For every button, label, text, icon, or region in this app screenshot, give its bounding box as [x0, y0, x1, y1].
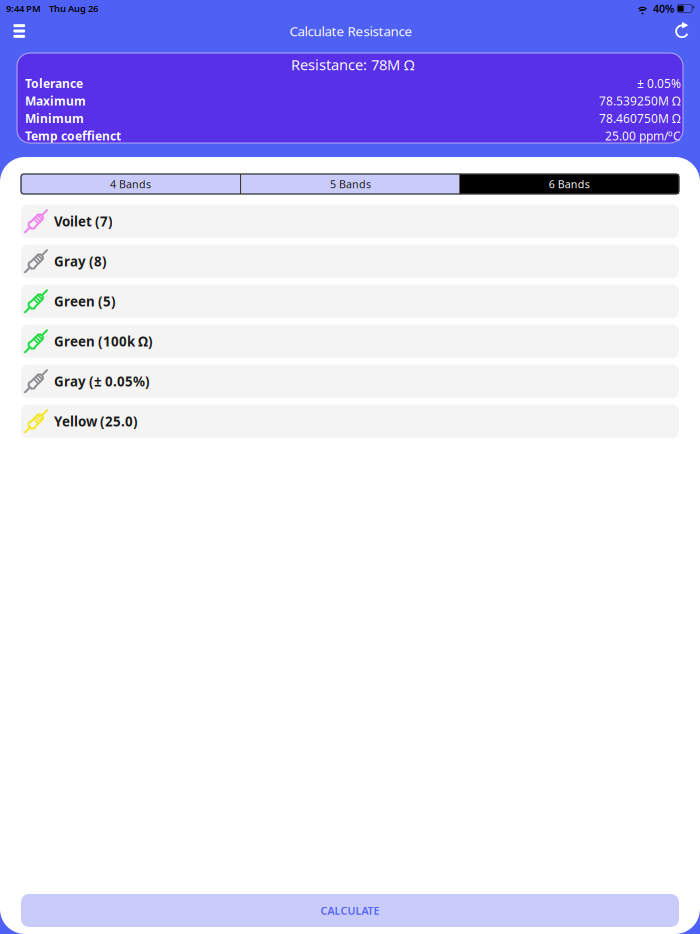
button[interactable]: Green (5): [21, 284, 679, 318]
staticText: Tolerance: [25, 75, 83, 91]
staticText: Calculate Resistance: [289, 22, 412, 40]
staticText: 40%: [653, 1, 674, 16]
button[interactable]: Gray (± 0.05%): [21, 364, 679, 398]
staticText: 78.539250M Ω: [599, 93, 681, 109]
staticText: 9:44 PM: [6, 2, 41, 15]
staticText: Temp coeffienct: [25, 128, 121, 144]
staticText: Maximum: [25, 93, 86, 109]
staticText: Yellow (25.0): [54, 412, 138, 430]
button[interactable]: Refresh: [669, 18, 695, 44]
staticText: Voilet (7): [54, 212, 113, 230]
staticText: Green (100k Ω): [54, 332, 153, 350]
button[interactable]: 4 Bands: [21, 174, 240, 194]
staticText: Thu Aug 26: [49, 2, 98, 15]
staticText: Minimum: [25, 110, 84, 126]
staticText: 6 Bands: [549, 177, 590, 191]
button[interactable]: Menu: [5, 18, 33, 44]
staticText: 25.00 ppm/ºC: [605, 128, 681, 144]
button[interactable]: Gray (8): [21, 244, 679, 278]
button[interactable]: 6 Bands: [459, 174, 679, 194]
button[interactable]: 5 Bands: [241, 174, 459, 194]
button[interactable]: Green (100k Ω): [21, 324, 679, 358]
staticText: CALCULATE: [320, 903, 379, 918]
staticText: Gray (8): [54, 252, 107, 270]
staticText: 4 Bands: [110, 177, 151, 191]
button[interactable]: Yellow (25.0): [21, 404, 679, 438]
staticText: Resistance: 78M Ω: [291, 55, 415, 74]
button[interactable]: CALCULATE: [21, 894, 679, 927]
button[interactable]: Voilet (7): [21, 204, 679, 238]
staticText: Gray (± 0.05%): [54, 372, 150, 390]
staticText: 78.460750M Ω: [599, 110, 681, 126]
staticText: 5 Bands: [330, 177, 371, 191]
staticText: ± 0.05%: [637, 75, 681, 91]
staticText: Green (5): [54, 292, 116, 310]
